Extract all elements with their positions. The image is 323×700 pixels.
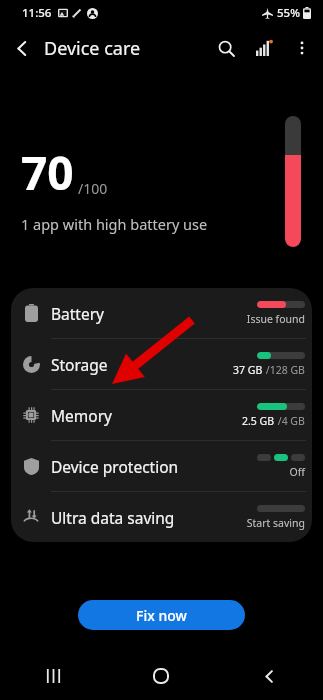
button[interactable]: Back xyxy=(215,652,323,700)
button[interactable]: Data usage xyxy=(245,29,283,67)
staticText: Memory xyxy=(51,405,112,426)
staticText: 55% xyxy=(277,5,300,21)
button[interactable]: Storage xyxy=(11,339,312,390)
staticText: /100 xyxy=(78,179,108,198)
staticText: 2.5 GB xyxy=(242,414,275,428)
staticText: Issue found xyxy=(246,312,305,326)
staticText: 37 GB xyxy=(233,363,263,377)
staticText: Fix now xyxy=(136,606,187,625)
button[interactable]: Recent apps xyxy=(0,652,107,700)
staticText: Storage xyxy=(51,354,108,375)
button[interactable]: More options xyxy=(283,29,321,67)
staticText: Off xyxy=(289,465,305,479)
staticText: 70 xyxy=(21,141,74,204)
button[interactable]: Back xyxy=(0,26,44,70)
staticText: Device protection xyxy=(51,456,179,477)
button[interactable]: Home xyxy=(107,652,215,700)
staticText: Start saving xyxy=(246,516,305,530)
button[interactable]: Memory xyxy=(11,390,312,441)
staticText: Ultra data saving xyxy=(51,507,175,528)
button[interactable]: Device protection xyxy=(11,441,312,492)
staticText: Device care xyxy=(44,36,141,61)
button[interactable]: Battery xyxy=(11,288,312,339)
staticText: Battery xyxy=(51,303,105,324)
button[interactable]: Search xyxy=(207,29,245,67)
staticText: /128 GB xyxy=(263,363,305,377)
staticText: 1 app with high battery use xyxy=(21,214,208,234)
staticText: 11:56 xyxy=(22,5,52,21)
staticText: /4 GB xyxy=(275,414,305,428)
button[interactable]: Fix now xyxy=(78,600,245,630)
button[interactable]: Ultra data saving xyxy=(11,492,312,542)
